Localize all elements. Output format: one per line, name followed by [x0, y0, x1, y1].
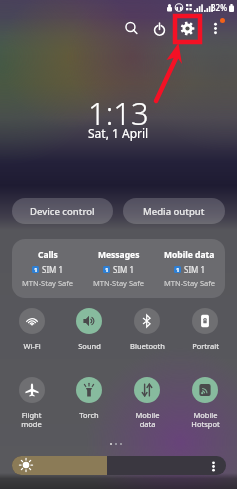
staticText: SIM 1 — [42, 264, 64, 275]
button[interactable]: Brightness settings — [207, 460, 219, 472]
staticText: Device control — [30, 205, 95, 218]
button[interactable]: Flight mode — [3, 377, 60, 429]
button[interactable]: Device control — [12, 198, 113, 224]
staticText: MTN-Stay Safe — [22, 278, 74, 288]
staticText: Flight mode — [21, 410, 42, 429]
button[interactable]: Brightness — [12, 456, 226, 475]
button[interactable]: Wi-Fi — [3, 308, 60, 351]
button[interactable]: More options — [203, 16, 227, 40]
staticText: Sat, 1 April — [88, 125, 149, 141]
staticText: SIM 1 — [113, 264, 135, 275]
staticText: 1 — [176, 266, 180, 273]
button[interactable]: Portrait — [176, 308, 234, 351]
staticText: 1 — [105, 266, 109, 273]
staticText: Mobile data — [164, 249, 215, 261]
button[interactable]: Mobile data — [154, 239, 225, 298]
staticText: Torch — [79, 410, 99, 420]
staticText: Mobile Hotspot — [191, 410, 220, 429]
staticText: Portrait — [192, 341, 219, 351]
button[interactable]: Search — [119, 16, 143, 40]
staticText: Wi-Fi — [23, 341, 41, 351]
button[interactable]: Power off — [147, 17, 171, 41]
button[interactable]: Bluetooth — [118, 308, 176, 351]
button[interactable]: Sound — [60, 308, 118, 351]
button[interactable]: Torch — [60, 377, 118, 420]
button[interactable]: Mobile Hotspot — [176, 377, 234, 429]
staticText: Sound — [78, 341, 101, 351]
staticText: SIM 1 — [184, 264, 206, 275]
staticText: Calls — [38, 249, 58, 261]
staticText: 1:13 — [88, 92, 149, 134]
staticText: Media output — [143, 205, 205, 218]
button[interactable]: Media output — [123, 198, 225, 224]
button[interactable]: Messages — [83, 239, 154, 298]
staticText: 1 — [34, 266, 38, 273]
staticText: MTN-Stay Safe — [164, 278, 216, 288]
staticText: MTN-Stay Safe — [93, 278, 145, 288]
button[interactable]: Mobile data — [118, 377, 176, 429]
staticText: Bluetooth — [130, 341, 165, 351]
staticText: Messages — [98, 249, 140, 261]
button[interactable]: Calls — [12, 239, 83, 298]
staticText: Mobile data — [135, 410, 160, 429]
button[interactable]: Settings — [175, 16, 199, 40]
staticText: 32% — [211, 2, 227, 13]
